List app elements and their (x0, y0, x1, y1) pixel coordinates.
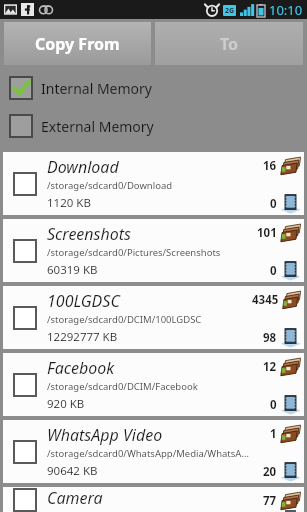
staticText: 101 (257, 225, 277, 241)
staticText: 90642 KB (47, 463, 98, 479)
staticText: 0 (270, 397, 277, 413)
staticText: 0 (270, 196, 277, 212)
button[interactable]: Screenshots (3, 219, 304, 282)
button[interactable]: 100LGDSC (3, 286, 304, 349)
staticText: Internal Memory (41, 79, 152, 98)
staticText: 20 (263, 464, 277, 480)
staticText: WhatsApp Video (47, 424, 163, 446)
other: Videos (280, 327, 301, 348)
staticText: 77 (263, 493, 277, 509)
other: Videos (280, 193, 301, 214)
staticText: 60319 KB (47, 262, 98, 278)
button[interactable]: External Memory (0, 113, 307, 139)
staticText: /storage/sdcard0/WhatsApp/Media/WhatsApp… (47, 447, 252, 460)
button[interactable]: WhatsApp Video (3, 420, 304, 483)
staticText: Copy From (35, 33, 120, 55)
staticText: 920 KB (47, 396, 85, 412)
staticText: 1 (270, 426, 277, 442)
staticText: To (220, 33, 239, 55)
button[interactable]: Facebook (3, 353, 304, 416)
staticText: /storage/sdcard0/Pictures/Screenshots (47, 246, 221, 259)
staticText: Camera (47, 487, 103, 509)
staticText: Facebook (47, 357, 115, 379)
staticText: 0 (270, 263, 277, 279)
other: Photos (280, 423, 301, 444)
button[interactable]: Download (3, 152, 304, 215)
staticText: Screenshots (47, 223, 132, 245)
other: Photos (280, 356, 301, 377)
other: Photos (280, 490, 301, 511)
button[interactable]: To (155, 22, 303, 65)
staticText: 98 (263, 330, 277, 346)
staticText: Download (47, 156, 119, 178)
staticText: 4345 (252, 292, 279, 308)
other: Photos (280, 222, 301, 243)
staticText: /storage/sdcard0/DCIM/100LGDSC (47, 313, 202, 326)
staticText: /storage/sdcard0/DCIM/Facebook (47, 380, 198, 393)
staticText: External Memory (41, 117, 154, 136)
other: Photos (282, 289, 301, 310)
button[interactable]: Copy From (4, 22, 151, 65)
other: Videos (280, 461, 301, 482)
staticText: 10:10 (269, 1, 303, 19)
staticText: /storage/sdcard0/Download (47, 179, 173, 192)
staticText: 12292777 KB (47, 329, 118, 345)
button[interactable]: Camera (3, 487, 304, 512)
other: Videos (280, 394, 301, 415)
other: Photos (280, 155, 301, 176)
button[interactable]: Internal Memory (0, 75, 307, 101)
staticText: 12 (263, 359, 277, 375)
staticText: 100LGDSC (47, 290, 120, 312)
staticText: 2G (225, 6, 235, 16)
other: Videos (280, 260, 301, 281)
staticText: 16 (263, 158, 277, 174)
staticText: 1120 KB (47, 195, 91, 211)
